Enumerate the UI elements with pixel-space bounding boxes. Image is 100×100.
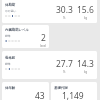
- staticText: 基礎代謝: [54, 86, 68, 90]
- button[interactable]: 体年齢: [2, 82, 49, 100]
- button[interactable]: 骨格筋: [2, 51, 97, 79]
- staticText: 15.6: [77, 4, 94, 16]
- staticText: 標準: [5, 34, 11, 38]
- staticText: kg: [84, 16, 88, 20]
- staticText: 27.7: [56, 58, 73, 70]
- staticText: 43: [35, 90, 45, 100]
- staticText: 2: [41, 32, 46, 44]
- staticText: 骨格筋: [5, 56, 16, 60]
- button[interactable]: 内臓脂肪レベル: [2, 25, 49, 48]
- staticText: 30.3: [56, 4, 73, 16]
- staticText: %: [63, 16, 66, 20]
- staticText: %: [63, 70, 66, 74]
- staticText: 体年齢: [5, 86, 16, 90]
- staticText: 体脂肪: [5, 3, 16, 7]
- staticText: 標準: [5, 62, 11, 66]
- button[interactable]: 基礎代謝: [51, 82, 97, 100]
- staticText: 内臓脂肪レベル: [5, 28, 29, 32]
- button[interactable]: 体脂肪: [2, 0, 97, 23]
- staticText: やや高い: [5, 9, 17, 13]
- staticText: 14.3: [77, 58, 94, 70]
- staticText: 1,149: [62, 90, 84, 100]
- staticText: kg: [84, 70, 88, 74]
- staticText: level: [40, 44, 46, 48]
